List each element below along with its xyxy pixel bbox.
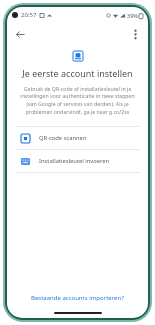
button[interactable]: Back <box>10 24 30 44</box>
staticText: QR-code scannen <box>39 134 87 142</box>
staticText: Je eerste account instellen <box>22 67 133 79</box>
staticText: Gebruik de QR-code of installatiesleutel… <box>16 85 139 116</box>
staticText: 20:57 <box>21 11 37 19</box>
staticText: Bestaande accounts importeren? <box>31 294 124 302</box>
button[interactable]: Bestaande accounts importeren? <box>7 288 148 308</box>
staticText: 39% <box>127 12 138 19</box>
button[interactable]: QR-code scannen <box>7 127 148 149</box>
button[interactable]: Installatiesleutel invoeren <box>7 150 148 172</box>
button[interactable]: More options <box>125 24 145 44</box>
staticText: Installatiesleutel invoeren <box>39 157 110 165</box>
